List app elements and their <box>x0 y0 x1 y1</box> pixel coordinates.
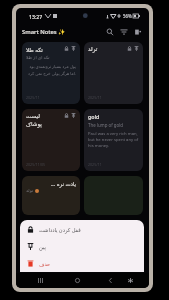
button[interactable]: gold <box>84 109 143 171</box>
staticText: تکه طلا <box>26 46 64 54</box>
staticText: پین <box>39 244 46 250</box>
staticText: Smart Notes ✨ <box>22 28 66 36</box>
staticText: قفل کردن یادداشت <box>39 226 81 233</box>
button[interactable]: Recent apps <box>32 273 48 288</box>
staticText: 2025/11 <box>88 162 102 167</box>
button[interactable]: ... یادت نره <box>22 176 80 215</box>
staticText: ... یادت نره <box>26 180 76 187</box>
button[interactable]: تکه طلا <box>22 42 80 104</box>
button[interactable]: ترلد <box>84 42 143 104</box>
button[interactable]: Search <box>103 25 117 39</box>
button[interactable]: پین <box>20 238 144 255</box>
button[interactable]: لیست پوشاک <box>22 109 80 171</box>
button[interactable]: قفل کردن یادداشت <box>20 221 144 238</box>
staticText: 2025/11/05 <box>26 162 46 167</box>
staticText: gold <box>88 113 100 120</box>
button[interactable]: Assistant <box>122 273 138 288</box>
staticText: پول مرد بسیار ثروتمندی بود اما هرگز پولی… <box>26 64 76 76</box>
staticText: تولد <box>26 188 34 193</box>
staticText: تکه ای از طلا <box>26 54 50 60</box>
button[interactable]: Sort <box>117 25 131 39</box>
staticText: 2025/11 <box>26 95 40 100</box>
button[interactable]: Home <box>69 273 85 288</box>
staticText: 13:27 <box>29 13 43 20</box>
button[interactable]: حذف <box>20 255 144 272</box>
staticText: ترلد <box>88 46 127 53</box>
staticText: لیست پوشاک <box>26 113 64 127</box>
staticText: 2025/11 <box>88 95 102 100</box>
button[interactable] <box>84 176 143 215</box>
staticText: حذف <box>39 261 51 267</box>
staticText: 56% <box>123 13 132 19</box>
staticText: The lump of gold <box>88 122 124 128</box>
button[interactable]: Back <box>102 273 118 288</box>
staticText: Paul was a very rich man, but he never s… <box>88 131 139 149</box>
button[interactable]: Delete all <box>131 25 145 39</box>
